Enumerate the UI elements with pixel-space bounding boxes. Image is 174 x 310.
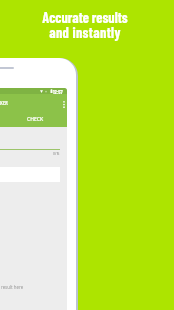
staticText: 12:57 [53,89,63,95]
button[interactable]: CHECK [19,114,51,125]
staticText: Accurate results [42,9,128,26]
staticText: 0/15 [53,151,60,156]
staticText: CHECK [27,116,44,123]
staticText: and instantly [49,24,121,41]
button[interactable]: More options [60,97,67,111]
staticText: IMEI CHECKER [0,100,8,106]
staticText: Sponsored · ad result here [0,284,24,290]
